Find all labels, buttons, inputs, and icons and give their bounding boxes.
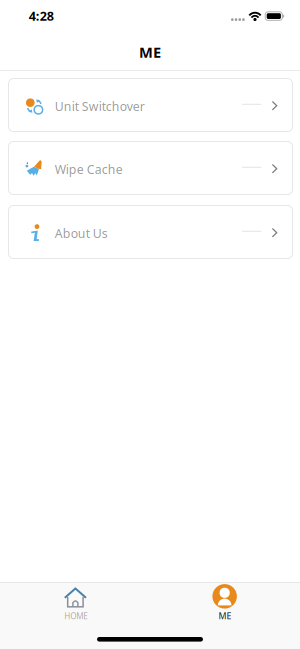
staticText: HOME (64, 611, 88, 622)
button[interactable]: Unit Switchover (8, 78, 292, 131)
button[interactable]: HOME (0, 583, 150, 625)
staticText: About Us (55, 225, 108, 242)
staticText: ME (218, 610, 231, 622)
staticText: Wipe Cache (55, 161, 123, 178)
button[interactable]: ME (150, 583, 300, 625)
button[interactable]: Wipe Cache (8, 141, 292, 194)
staticText: ME (139, 42, 161, 62)
button[interactable]: About Us (8, 205, 292, 258)
staticText: Unit Switchover (55, 98, 145, 115)
staticText: 4:28 (29, 7, 54, 24)
